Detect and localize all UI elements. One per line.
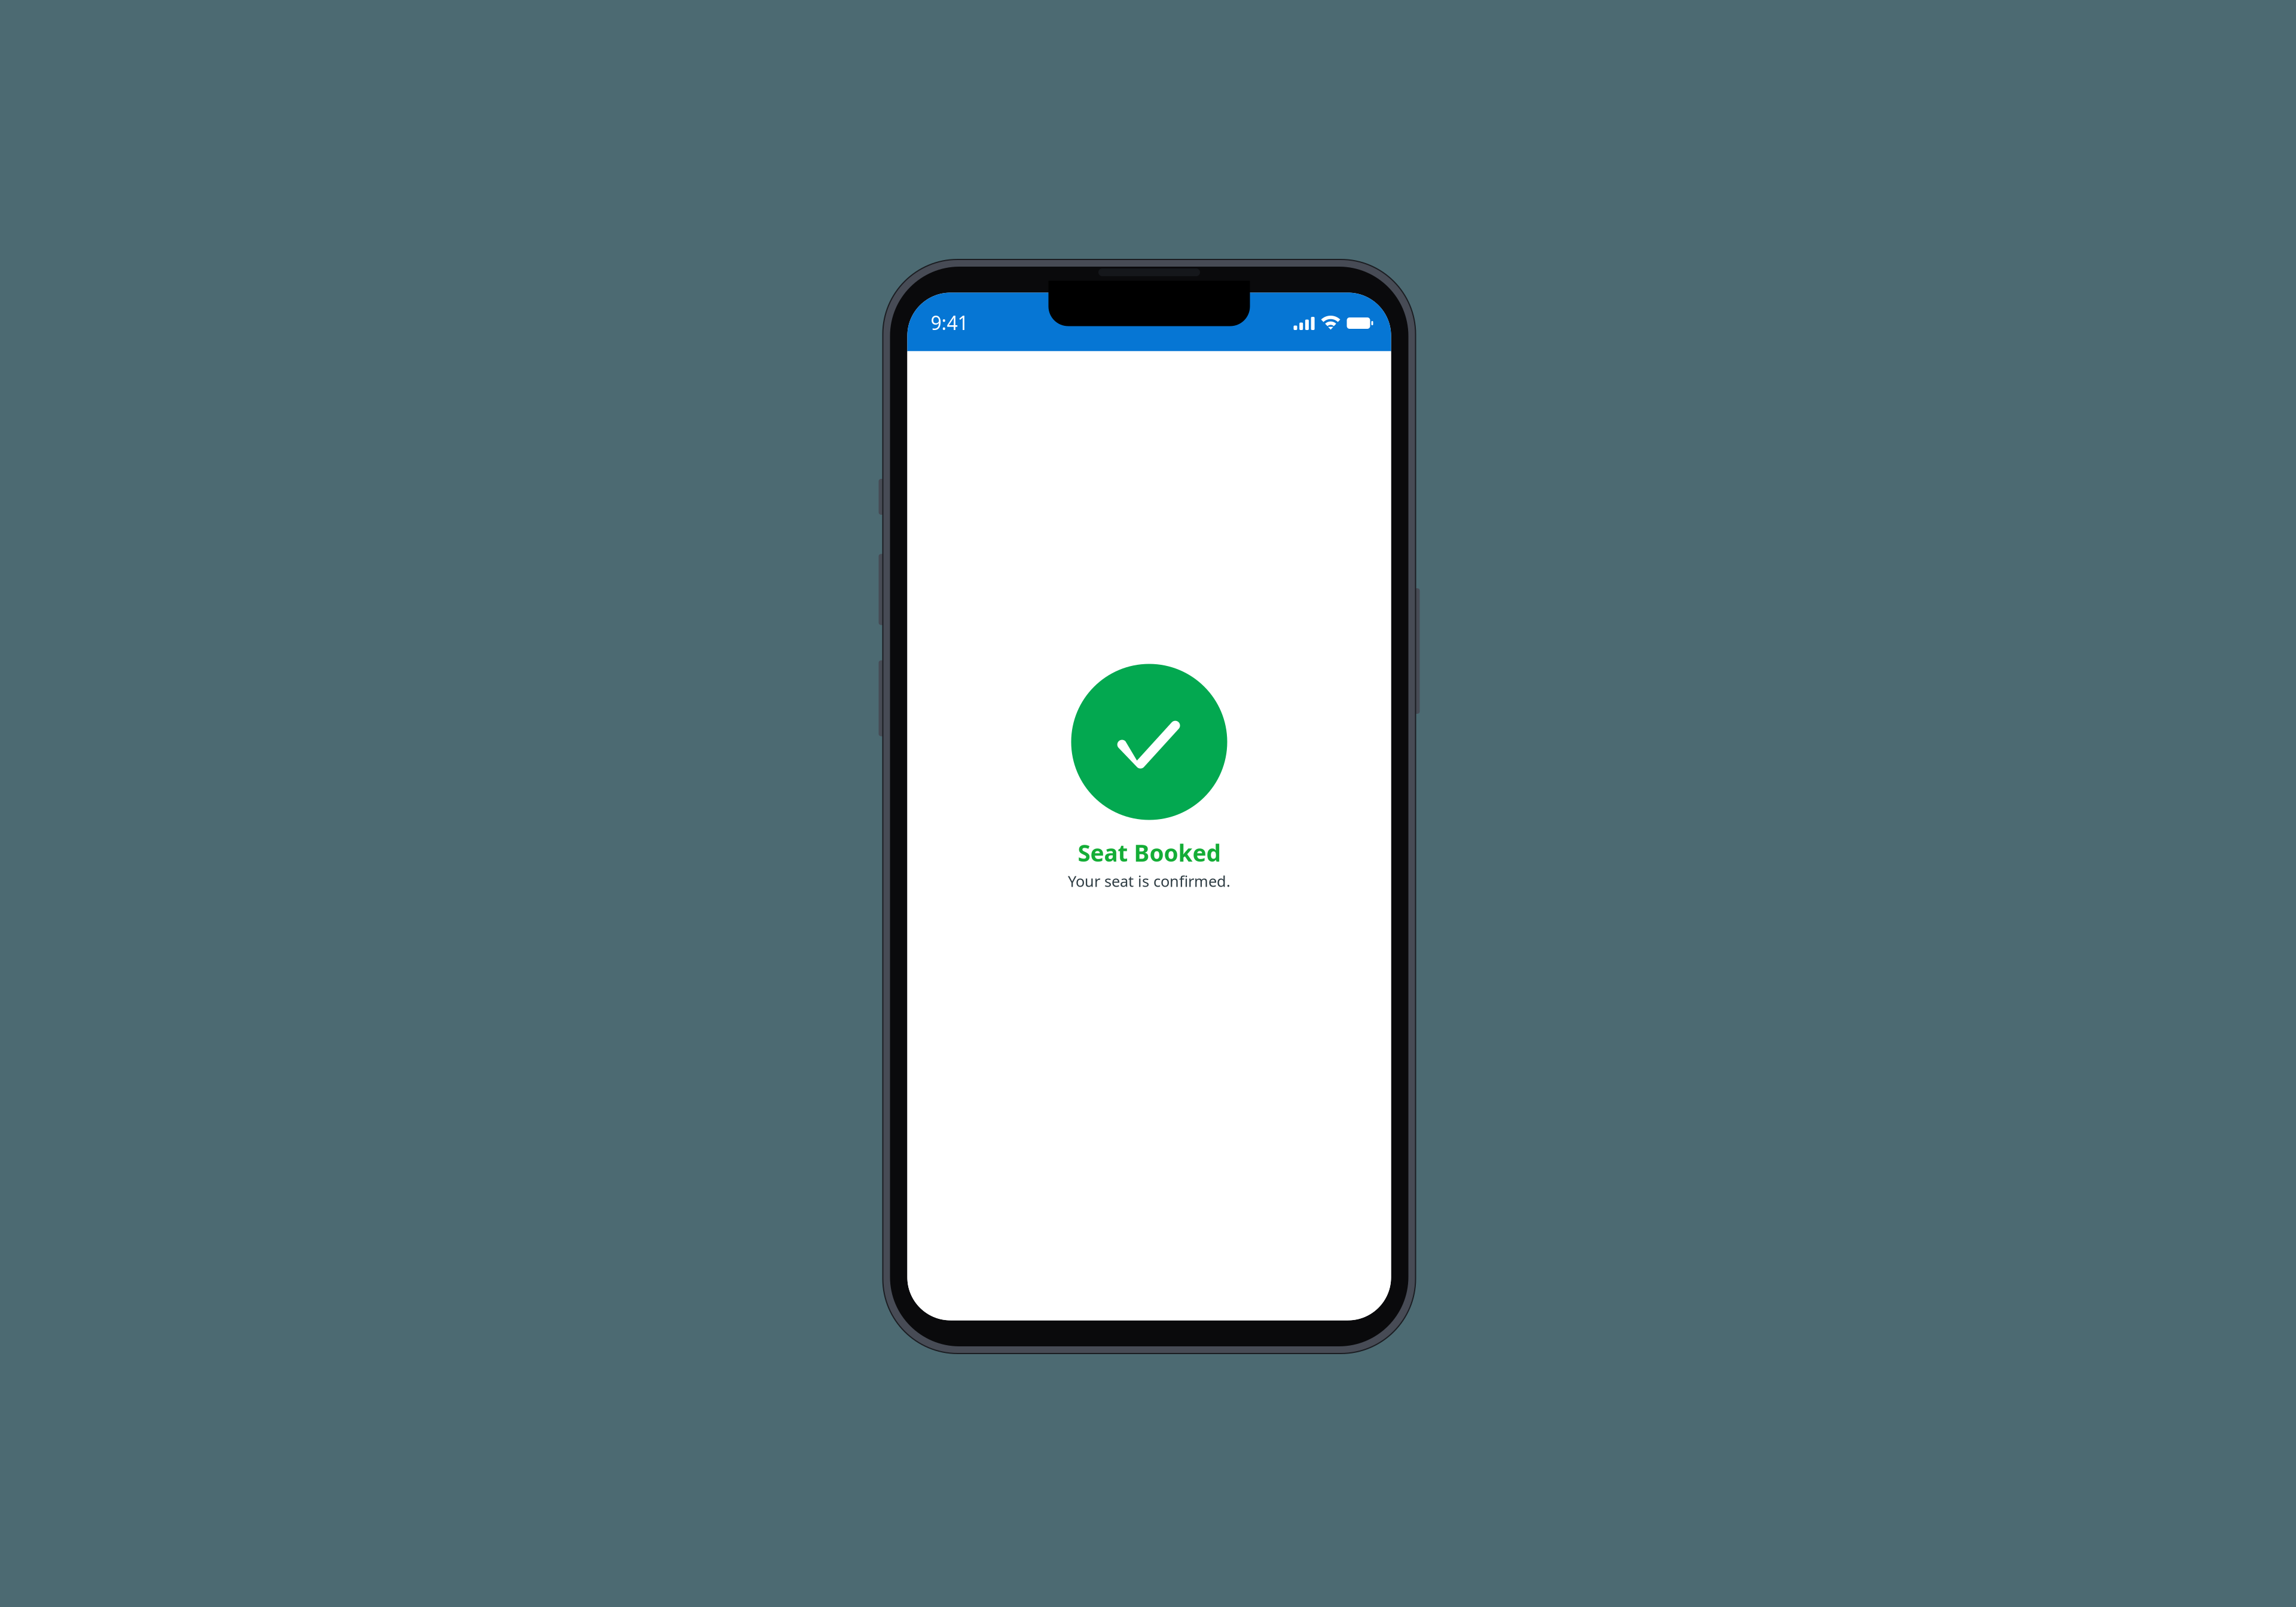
button[interactable]: Seat Booked: [1068, 664, 1231, 891]
staticText: Your seat is confirmed.: [1068, 871, 1231, 891]
staticText: Seat Booked: [1078, 837, 1221, 868]
staticText: 9:41: [931, 310, 968, 335]
